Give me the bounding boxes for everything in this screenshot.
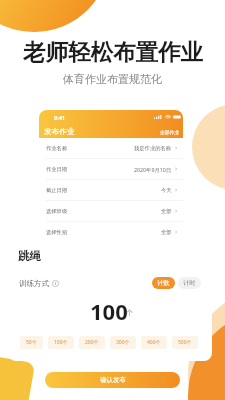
staticText: 今天 [161,187,172,194]
staticText: 全部作业 [160,129,180,135]
staticText: 选择班级 [46,208,68,215]
other: Info [52,280,59,287]
button[interactable]: 选择班级 [39,201,183,221]
staticText: 计时 [183,279,196,287]
other: Status icons [154,115,178,119]
staticText: 确认发布 [100,376,126,384]
staticText: 作业日期 [46,166,68,173]
staticText: 计数 [157,279,170,287]
staticText: 选择性别 [46,229,68,236]
button[interactable]: 选择性别 [39,222,183,242]
staticText: 9:41 [54,114,65,121]
button[interactable]: 500个 [172,336,198,349]
staticText: 300个 [116,339,130,346]
staticText: 老师轻松布置作业 [23,38,203,66]
staticText: 发布作业 [44,127,75,137]
staticText: 50个 [26,339,37,346]
button[interactable]: 确认发布 [45,372,180,388]
staticText: 我是作业的名称 [134,145,172,152]
button[interactable]: 100个 [48,336,74,349]
staticText: 全部 [161,208,172,215]
button[interactable]: 截止日期 [39,180,183,200]
button[interactable]: 作业名称 [39,138,183,158]
staticText: 100 [90,296,128,326]
staticText: 训练方式 [19,279,49,288]
staticText: 400个 [147,339,161,346]
button[interactable]: 50个 [20,336,43,349]
staticText: 体育作业布置规范化 [63,72,162,86]
button[interactable]: 计时 [178,277,201,289]
staticText: 全部 [161,229,172,236]
staticText: 个 [126,308,133,317]
staticText: 500个 [178,339,192,346]
button[interactable]: 计数 [152,277,175,289]
staticText: 截止日期 [46,187,68,194]
button[interactable]: 作业日期 [39,159,183,179]
staticText: 作业名称 [46,145,68,152]
staticText: 2020年9月10日 [134,166,172,173]
button[interactable]: 300个 [110,336,136,349]
button[interactable]: 400个 [141,336,167,349]
staticText: 跳绳 [18,249,41,263]
staticText: 200个 [85,339,99,346]
staticText: 100个 [54,339,68,346]
button[interactable]: 200个 [79,336,105,349]
